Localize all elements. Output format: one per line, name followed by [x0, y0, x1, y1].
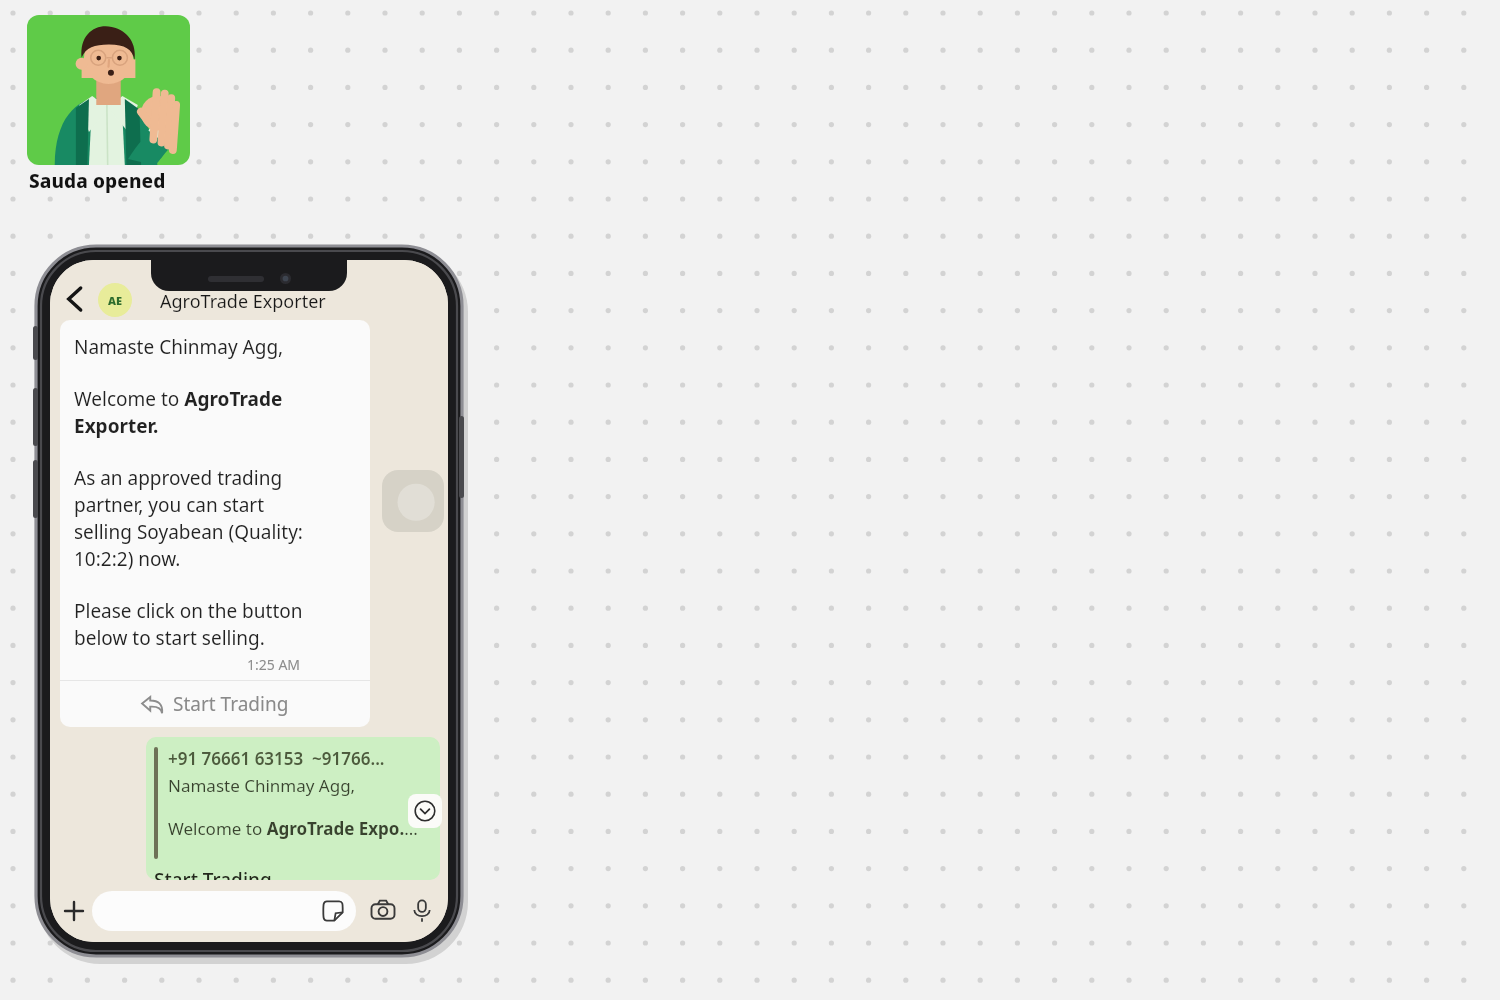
button[interactable]: +91 76661 63153 ~91766... [146, 737, 440, 880]
staticText: AE [108, 293, 123, 308]
button[interactable]: Back [56, 282, 90, 316]
staticText: Welcome to AgroTrade Expo.... [168, 817, 418, 840]
other: Stickers [320, 898, 346, 924]
button[interactable]: Stickers [92, 891, 356, 931]
button[interactable]: Scroll to bottom [408, 794, 442, 828]
staticText: Welcome to AgroTrade Exporter. [74, 386, 283, 439]
staticText: As an approved trading partner, you can … [74, 465, 303, 572]
staticText: Sauda opened [29, 168, 166, 194]
staticText: Namaste Chinmay Agg, [74, 334, 284, 360]
button[interactable]: Sauda opened illustration [27, 15, 190, 165]
staticText: Namaste Chinmay Agg, [168, 774, 356, 797]
staticText: Start Trading [173, 691, 289, 717]
button[interactable]: AgroTrade Exporter avatar [98, 283, 132, 317]
staticText: Please click on the button below to star… [74, 598, 303, 651]
button[interactable]: Camera [364, 892, 402, 930]
button[interactable]: Voice message [404, 893, 440, 929]
button[interactable]: AgroTrade Exporter [160, 289, 326, 314]
button[interactable]: Attach [56, 893, 92, 929]
staticText: +91 76661 63153 ~91766... [168, 747, 385, 770]
staticText: 1:25 AM [247, 655, 301, 674]
staticText: Start Trading [154, 867, 272, 880]
button[interactable]: Namaste Chinmay Agg, [60, 320, 370, 727]
button[interactable]: Start Trading [60, 681, 370, 727]
